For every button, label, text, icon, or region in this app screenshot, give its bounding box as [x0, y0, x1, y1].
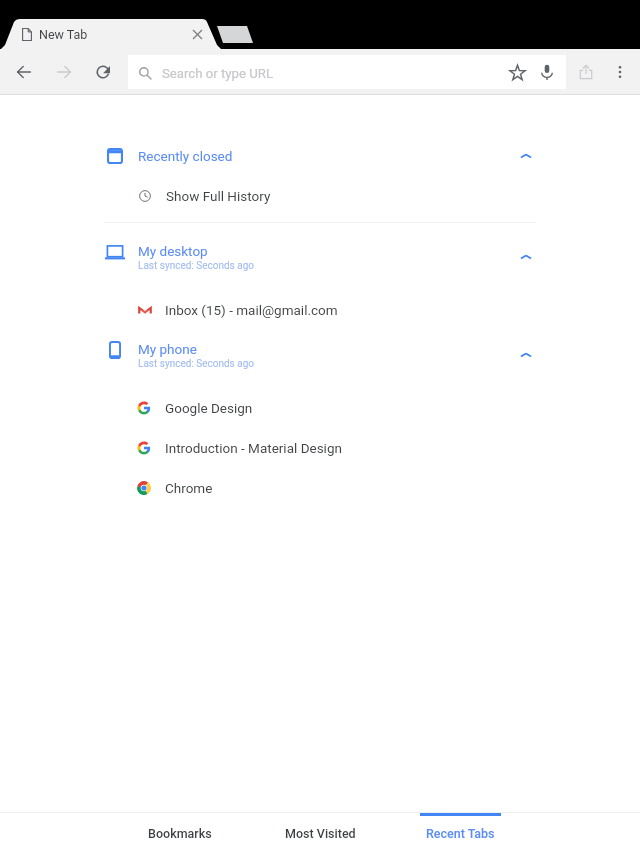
- button[interactable]: Show Full History: [0, 176, 640, 216]
- staticText: Search or type URL: [162, 66, 274, 81]
- staticText: Bookmarks: [148, 826, 212, 841]
- button[interactable]: My phone: [0, 330, 640, 370]
- button[interactable]: Recently closed: [0, 136, 640, 176]
- button[interactable]: Collapse section: [508, 337, 544, 373]
- staticText: My phone: [138, 341, 197, 357]
- button[interactable]: Back: [6, 54, 42, 90]
- staticText: Google Design: [165, 400, 253, 416]
- button[interactable]: Reload: [85, 54, 121, 90]
- button[interactable]: My desktop: [0, 232, 640, 272]
- button[interactable]: Share: [568, 54, 604, 90]
- button[interactable]: Recent Tabs: [390, 813, 530, 853]
- button[interactable]: Most Visited: [250, 813, 390, 853]
- button[interactable]: New Tab: [14, 19, 204, 49]
- button[interactable]: Collapse section: [508, 239, 544, 275]
- staticText: Last synced: Seconds ago: [138, 358, 254, 370]
- staticText: Inbox (15) - mail@gmail.com: [165, 302, 338, 318]
- button[interactable]: Bookmark: [500, 55, 534, 89]
- button[interactable]: Bookmarks: [110, 813, 250, 853]
- button[interactable]: Introduction - Material Design: [0, 428, 640, 468]
- button[interactable]: Collapse section: [508, 138, 544, 174]
- staticText: Introduction - Material Design: [165, 440, 342, 456]
- staticText: Recent Tabs: [426, 826, 495, 841]
- button[interactable]: More options: [602, 54, 638, 90]
- staticText: Recently closed: [138, 148, 233, 164]
- staticText: Most Visited: [285, 826, 356, 841]
- staticText: Last synced: Seconds ago: [138, 260, 254, 272]
- staticText: New Tab: [39, 27, 88, 42]
- staticText: Show Full History: [166, 188, 271, 204]
- button[interactable]: Chrome: [0, 468, 640, 508]
- button[interactable]: Close tab: [185, 22, 209, 46]
- staticText: My desktop: [138, 243, 208, 259]
- button[interactable]: Voice search: [530, 55, 564, 89]
- button[interactable]: Search or type URL: [128, 55, 566, 89]
- staticText: Chrome: [165, 480, 213, 496]
- button[interactable]: Forward: [46, 54, 82, 90]
- button[interactable]: Google Design: [0, 388, 640, 428]
- button[interactable]: Inbox (15) - mail@gmail.com: [0, 290, 640, 330]
